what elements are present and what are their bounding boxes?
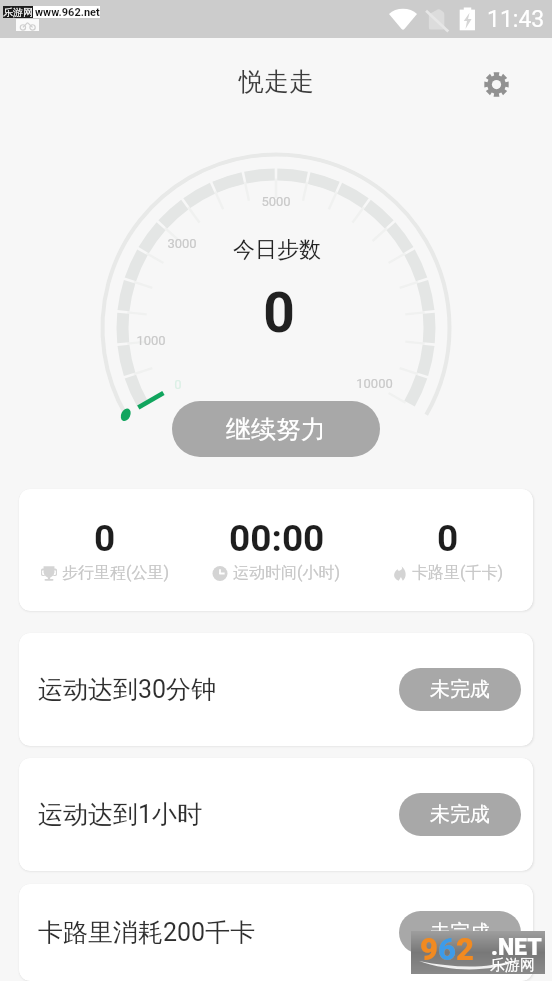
staticText: 今日步数: [233, 236, 321, 264]
staticText: 乐游网: [3, 6, 33, 18]
staticText: 0: [174, 377, 182, 392]
button[interactable]: 卡路里消耗200千卡: [19, 884, 533, 981]
button[interactable]: 继续努力: [172, 401, 380, 457]
staticText: 00:00: [229, 517, 325, 560]
staticText: 运动达到1小时: [38, 799, 203, 830]
button[interactable]: 未完成: [399, 911, 521, 954]
staticText: 卡路里(千卡): [412, 563, 504, 583]
button[interactable]: 运动达到1小时: [19, 758, 533, 871]
button[interactable]: 运动达到30分钟: [19, 633, 533, 746]
staticText: 步行里程(公里): [62, 563, 170, 583]
staticText: 0: [263, 281, 295, 345]
button[interactable]: 未完成: [399, 668, 521, 711]
staticText: www.962.net: [35, 6, 100, 18]
staticText: 未完成: [430, 677, 490, 702]
staticText: 运动时间(小时): [233, 563, 341, 583]
button[interactable]: Settings: [479, 67, 514, 102]
staticText: 继续努力: [226, 414, 326, 445]
staticText: 未完成: [430, 920, 490, 945]
staticText: 5000: [261, 194, 291, 209]
staticText: 0: [94, 517, 116, 560]
staticText: 1000: [136, 333, 166, 348]
staticText: 悦走走: [239, 66, 314, 97]
staticText: 10000: [356, 376, 393, 391]
button[interactable]: 未完成: [399, 793, 521, 836]
staticText: 3000: [167, 236, 197, 251]
staticText: .NET: [491, 934, 542, 961]
staticText: 乐游网: [490, 956, 535, 975]
staticText: 0: [437, 517, 459, 560]
staticText: 卡路里消耗200千卡: [38, 917, 256, 948]
staticText: 运动达到30分钟: [38, 674, 217, 705]
staticText: 6: [438, 931, 456, 967]
staticText: 未完成: [430, 802, 490, 827]
staticText: 11:43: [487, 6, 545, 33]
staticText: 962: [420, 931, 474, 967]
